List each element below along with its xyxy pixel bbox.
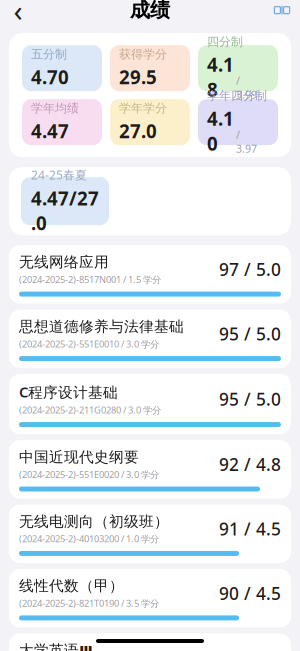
staticText: 获得学分 (119, 47, 167, 62)
staticText: (2024-2025-2)-8517N001 / 1.5 学分 (19, 273, 161, 286)
button[interactable]: 无线电测向（初级班） (9, 504, 291, 563)
staticText: 27.0 (119, 119, 157, 143)
staticText: / 3.99 (236, 73, 257, 102)
staticText: 四分制 (207, 34, 243, 49)
staticText: (2024-2025-2)-40103200 / 1.0 学分 (19, 532, 159, 545)
staticText: 4.10 (207, 106, 234, 156)
staticText: 4.47 (31, 119, 69, 143)
staticText: 线性代数（甲） (19, 577, 124, 595)
staticText: 97 / 5.0 (219, 258, 281, 281)
staticText: 4.47/27.0 (31, 186, 99, 235)
button[interactable]: Compare (264, 0, 300, 27)
staticText: 95 / 5.0 (219, 322, 281, 345)
staticText: 中国近现代史纲要 (19, 448, 139, 466)
staticText: (2024-2025-2)-821T0190 / 3.5 学分 (19, 597, 159, 609)
staticText: (2024-2025-2)-551E0020 / 3.0 学分 (19, 468, 159, 480)
button[interactable]: 线性代数（甲） (9, 569, 291, 627)
button[interactable]: 思想道德修养与法律基础 (9, 310, 291, 368)
staticText: 92 / 4.8 (219, 453, 281, 476)
staticText: 成绩 (130, 0, 170, 22)
button[interactable]: 中国近现代史纲要 (9, 440, 291, 499)
staticText: 五分制 (31, 47, 67, 62)
staticText: 90 / 4.5 (219, 582, 281, 605)
staticText: 24-25春夏 (31, 167, 87, 183)
staticText: 4.18 (207, 52, 234, 102)
staticText: 大学英语Ⅲ (19, 641, 93, 651)
staticText: ‹ (13, 0, 22, 30)
staticText: 学年均绩 (31, 101, 79, 116)
button[interactable]: C程序设计基础 (9, 374, 291, 434)
staticText: 4.70 (31, 65, 69, 89)
button[interactable]: 无线网络应用 (9, 245, 291, 304)
staticText: 29.5 (119, 65, 157, 89)
staticText: 无线网络应用 (19, 253, 109, 271)
staticText: (2024-2025-2)-211G0280 / 3.0 学分 (19, 404, 161, 416)
staticText: 学年四分制 (207, 88, 267, 103)
staticText: C程序设计基础 (19, 382, 118, 402)
staticText: 无线电测向（初级班） (19, 512, 169, 530)
staticText: 学年学分 (119, 101, 167, 116)
button[interactable]: 大学英语Ⅲ (9, 633, 291, 651)
staticText: / 3.97 (236, 127, 257, 156)
staticText: 91 / 4.5 (219, 517, 281, 540)
staticText: 思想道德修养与法律基础 (19, 318, 184, 336)
button[interactable]: Back (0, 0, 36, 27)
staticText: 95 / 5.0 (219, 388, 281, 411)
staticText: (2024-2025-2)-551E0010 / 3.0 学分 (19, 338, 159, 350)
